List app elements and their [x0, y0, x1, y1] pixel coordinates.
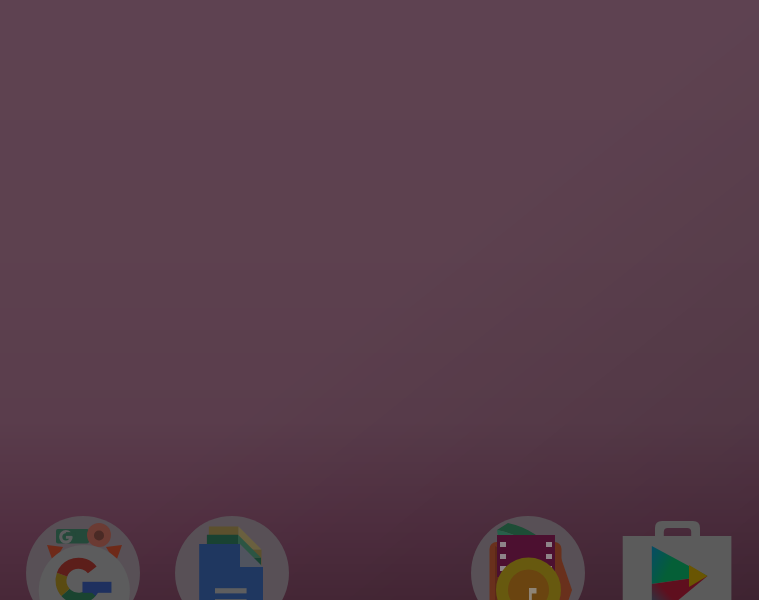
button[interactable]: Google folder: [26, 516, 140, 600]
button[interactable]: Play media folder: [471, 516, 585, 600]
button[interactable]: Play Store: [621, 514, 735, 600]
button[interactable]: Docs folder: [175, 516, 289, 600]
